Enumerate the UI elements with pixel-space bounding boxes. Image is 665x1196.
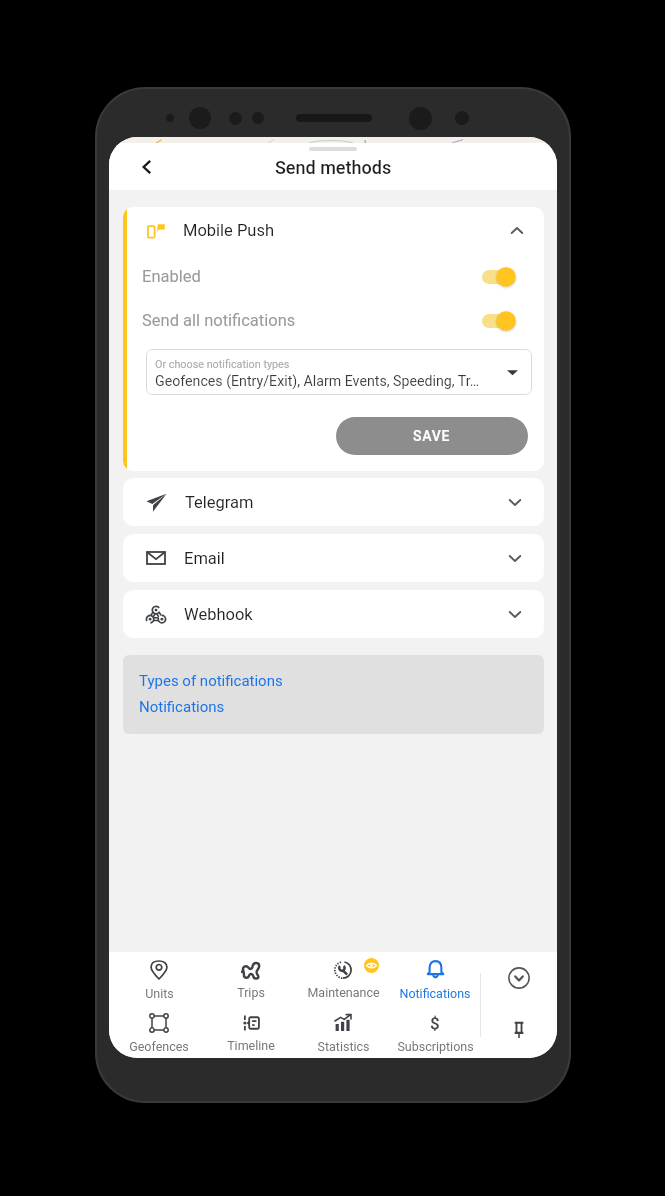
staticText: SAVE — [413, 428, 451, 444]
button[interactable]: Maintenance — [297, 952, 389, 1005]
button[interactable]: Webhook — [123, 590, 544, 638]
button[interactable]: Collapse — [501, 960, 537, 996]
staticText: Or choose notification types — [155, 358, 290, 371]
staticText: Maintenance — [307, 985, 380, 1000]
button[interactable]: Telegram — [123, 478, 544, 526]
button[interactable]: Or choose notification types — [146, 349, 532, 395]
button[interactable]: Email — [123, 534, 544, 582]
staticText: Send all notifications — [142, 311, 296, 330]
staticText: Notifications — [399, 986, 471, 1001]
button[interactable]: Statistics — [297, 1005, 389, 1058]
staticText: Mobile Push — [183, 221, 275, 240]
staticText: Geofences (Entry/Exit), Alarm Events, Sp… — [155, 373, 480, 390]
button[interactable]: Pin — [503, 1014, 535, 1046]
button[interactable]: Types of notifications — [139, 672, 283, 690]
button[interactable]: Back — [126, 147, 166, 187]
button[interactable]: Geofences — [113, 1005, 205, 1058]
staticText: $ — [430, 1013, 440, 1033]
button[interactable]: $ — [389, 1005, 481, 1058]
staticText: Statistics — [317, 1039, 370, 1054]
staticText: Email — [184, 549, 225, 568]
button[interactable]: Timeline — [205, 1005, 297, 1058]
staticText: Enabled — [142, 267, 201, 286]
button[interactable]: Notifications — [389, 952, 481, 1005]
staticText: Send methods — [275, 157, 392, 178]
button[interactable]: SAVE — [336, 417, 528, 455]
staticText: Subscriptions — [397, 1039, 474, 1054]
button[interactable]: Trips — [205, 952, 297, 1005]
button[interactable]: Units — [113, 952, 205, 1005]
staticText: Trips — [237, 985, 265, 1000]
button[interactable]: Mobile Push — [127, 207, 544, 254]
staticText: Telegram — [185, 493, 254, 512]
button[interactable]: Notifications — [139, 698, 225, 716]
staticText: Geofences — [129, 1039, 189, 1054]
button[interactable]: Send all notifications — [127, 299, 544, 341]
staticText: Webhook — [184, 605, 253, 624]
button[interactable]: Enabled — [127, 254, 544, 299]
staticText: Units — [145, 986, 174, 1001]
staticText: Timeline — [227, 1038, 275, 1053]
